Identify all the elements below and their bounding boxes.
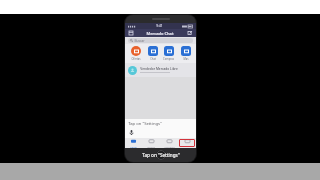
button[interactable]: Menu [128,30,134,36]
button[interactable]: Compras [160,138,178,148]
staticText: Buscar [134,39,145,43]
staticText: Compras [163,57,174,61]
staticText: Vendedor Mercado Libre [140,67,178,71]
staticText: Ajustes [183,145,192,147]
button[interactable]: Ofertas [128,46,143,61]
staticText: Mercado Chat [146,31,174,36]
button[interactable]: Compras [161,46,176,61]
staticText: Mas [183,57,189,61]
staticText: Tap on "Settings" [128,121,162,127]
staticText: Ofertas [131,57,141,61]
button[interactable]: Chats [125,138,142,148]
button[interactable]: New chat [187,30,193,36]
button[interactable]: Vendedor Mercado Libre [125,63,196,77]
button[interactable]: Buscar [128,38,193,43]
button[interactable]: Microphone [128,129,134,135]
staticText: Chats [130,145,137,148]
staticText: Tap on "Settings" [142,152,180,158]
staticText: Chat [150,57,156,61]
staticText: 9:41 [156,24,163,28]
button[interactable]: Ajustes [179,139,195,147]
button[interactable]: Ventas [142,138,160,148]
button[interactable]: Chat [145,46,160,61]
button[interactable]: Mas [178,46,193,61]
staticText: Ventas [147,145,155,148]
staticText: Compras [164,145,175,148]
